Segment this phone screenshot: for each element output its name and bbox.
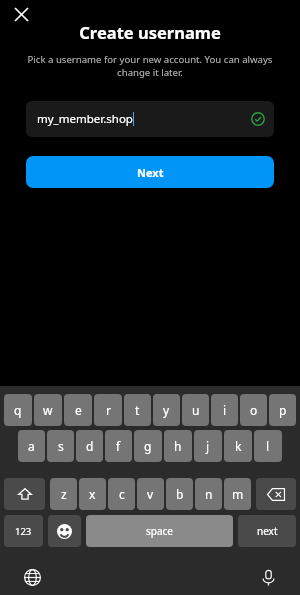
staticText: e xyxy=(75,402,82,418)
staticText: my_member.shop xyxy=(37,111,133,127)
button[interactable]: q xyxy=(4,394,32,426)
button[interactable]: space xyxy=(86,515,233,547)
button[interactable]: d xyxy=(76,430,103,462)
staticText: z xyxy=(61,486,67,502)
button[interactable]: Shift xyxy=(4,478,45,510)
button[interactable]: s xyxy=(47,430,74,462)
staticText: o xyxy=(250,402,258,418)
button[interactable]: Emoji xyxy=(48,515,81,547)
staticText: s xyxy=(58,438,64,454)
button[interactable]: o xyxy=(240,394,267,426)
staticText: m xyxy=(232,486,244,502)
button[interactable]: y xyxy=(153,394,180,426)
button[interactable]: z xyxy=(50,478,77,510)
button[interactable]: next xyxy=(238,515,296,547)
button[interactable]: i xyxy=(211,394,238,426)
staticText: h xyxy=(174,438,182,454)
button[interactable]: my_member.shop xyxy=(26,101,274,137)
button[interactable]: h xyxy=(164,430,192,462)
button[interactable]: Change language xyxy=(22,567,42,587)
staticText: Pick a username for your new account. Yo… xyxy=(24,53,276,79)
staticText: v xyxy=(147,486,154,502)
staticText: next xyxy=(257,524,278,538)
button[interactable]: n xyxy=(195,478,222,510)
button[interactable]: b xyxy=(166,478,193,510)
staticText: u xyxy=(192,402,200,418)
staticText: 123 xyxy=(15,525,32,538)
button[interactable]: e xyxy=(64,394,92,426)
button[interactable]: t xyxy=(124,394,151,426)
staticText: Create username xyxy=(79,21,221,43)
staticText: w xyxy=(43,402,53,418)
staticText: j xyxy=(206,438,210,454)
staticText: p xyxy=(279,402,287,418)
staticText: x xyxy=(89,486,96,502)
button[interactable]: c xyxy=(108,478,135,510)
button[interactable]: Next xyxy=(26,156,274,188)
staticText: q xyxy=(14,402,22,418)
staticText: i xyxy=(223,402,227,418)
button[interactable]: Voice input xyxy=(258,567,278,587)
staticText: b xyxy=(176,486,184,502)
button[interactable]: u xyxy=(182,394,209,426)
staticText: space xyxy=(146,524,173,538)
button[interactable]: m xyxy=(224,478,251,510)
staticText: f xyxy=(116,438,121,454)
button[interactable]: a xyxy=(18,430,45,462)
staticText: Next xyxy=(137,165,164,180)
button[interactable]: j xyxy=(194,430,222,462)
staticText: n xyxy=(205,486,213,502)
button[interactable]: r xyxy=(94,394,122,426)
staticText: d xyxy=(86,438,94,454)
button[interactable]: g xyxy=(134,430,162,462)
staticText: k xyxy=(235,438,242,454)
staticText: r xyxy=(106,402,111,418)
button[interactable]: w xyxy=(34,394,62,426)
staticText: t xyxy=(135,402,140,418)
button[interactable]: Backspace xyxy=(256,478,296,510)
button[interactable]: x xyxy=(79,478,106,510)
button[interactable]: f xyxy=(105,430,132,462)
staticText: y xyxy=(163,402,170,418)
staticText: l xyxy=(266,438,270,454)
button[interactable]: Close xyxy=(9,2,33,26)
button[interactable]: 123 xyxy=(4,515,43,547)
button[interactable]: k xyxy=(224,430,252,462)
button[interactable]: l xyxy=(254,430,282,462)
staticText: g xyxy=(144,438,152,454)
button[interactable]: v xyxy=(137,478,164,510)
button[interactable]: p xyxy=(269,394,296,426)
staticText: c xyxy=(119,486,125,502)
staticText: a xyxy=(28,438,35,454)
